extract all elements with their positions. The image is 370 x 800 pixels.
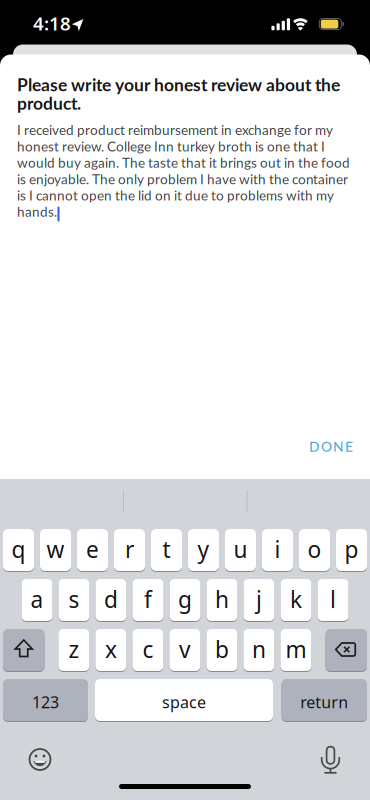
staticText: p: [344, 534, 358, 564]
staticText: f: [144, 584, 152, 614]
staticText: x: [105, 634, 117, 664]
staticText: is enjoyable. The only problem I have wi…: [17, 171, 348, 187]
staticText: return: [300, 691, 348, 713]
button[interactable]: Dictation: [318, 744, 343, 775]
button[interactable]: z: [58, 628, 89, 671]
staticText: d: [104, 584, 118, 614]
button[interactable]: 123: [3, 678, 88, 721]
button[interactable]: Shift: [3, 628, 44, 671]
staticText: o: [307, 534, 321, 564]
button[interactable]: n: [243, 628, 274, 671]
staticText: k: [290, 584, 302, 614]
button[interactable]: Emoji: [29, 748, 52, 772]
button[interactable]: b: [206, 628, 237, 671]
button[interactable]: h: [206, 578, 237, 621]
staticText: y: [197, 534, 209, 564]
button[interactable]: q: [3, 528, 34, 571]
staticText: l: [330, 584, 336, 614]
staticText: i: [274, 534, 280, 564]
staticText: 4:18: [33, 11, 71, 36]
staticText: j: [256, 584, 262, 614]
button[interactable]: a: [21, 578, 52, 621]
staticText: D O N E: [309, 438, 353, 455]
staticText: honest review. College Inn turkey broth …: [17, 138, 325, 154]
button[interactable]: c: [132, 628, 163, 671]
button[interactable]: g: [169, 578, 200, 621]
staticText: 123: [32, 691, 59, 713]
staticText: q: [11, 534, 25, 564]
button[interactable]: u: [225, 528, 256, 571]
staticText: e: [86, 534, 99, 564]
button[interactable]: w: [40, 528, 71, 571]
button[interactable]: k: [280, 578, 311, 621]
button[interactable]: y: [188, 528, 219, 571]
staticText: t: [162, 534, 170, 564]
button[interactable]: t: [151, 528, 182, 571]
staticText: Please write your honest review about th…: [17, 74, 340, 95]
staticText: I received product reimbursement in exch…: [17, 122, 333, 138]
staticText: m: [285, 634, 306, 664]
button[interactable]: x: [95, 628, 126, 671]
staticText: z: [68, 634, 79, 664]
staticText: w: [46, 534, 64, 564]
button[interactable]: d: [95, 578, 126, 621]
button[interactable]: return: [281, 678, 367, 721]
button[interactable]: Delete: [325, 628, 367, 671]
button[interactable]: s: [58, 578, 89, 621]
staticText: a: [30, 584, 43, 614]
button[interactable]: p: [336, 528, 367, 571]
button[interactable]: o: [299, 528, 330, 571]
staticText: product.: [17, 92, 81, 113]
button[interactable]: D O N E: [309, 438, 353, 455]
staticText: c: [142, 634, 153, 664]
staticText: space: [162, 691, 206, 713]
button[interactable]: space: [95, 678, 273, 721]
staticText: is I cannot open the lid on it due to pr…: [17, 187, 334, 203]
button[interactable]: j: [243, 578, 274, 621]
button[interactable]: m: [280, 628, 311, 671]
button[interactable]: l: [317, 578, 348, 621]
staticText: u: [233, 534, 247, 564]
button[interactable]: f: [132, 578, 163, 621]
button[interactable]: r: [114, 528, 145, 571]
staticText: g: [178, 584, 192, 614]
staticText: hands.: [17, 203, 57, 220]
staticText: r: [125, 534, 134, 564]
staticText: v: [179, 634, 191, 664]
staticText: b: [215, 634, 229, 664]
button[interactable]: e: [77, 528, 108, 571]
button[interactable]: v: [169, 628, 200, 671]
staticText: n: [252, 634, 266, 664]
staticText: h: [215, 584, 229, 614]
button[interactable]: i: [262, 528, 293, 571]
staticText: would buy again. The taste that it bring…: [17, 154, 350, 171]
staticText: s: [68, 584, 79, 614]
